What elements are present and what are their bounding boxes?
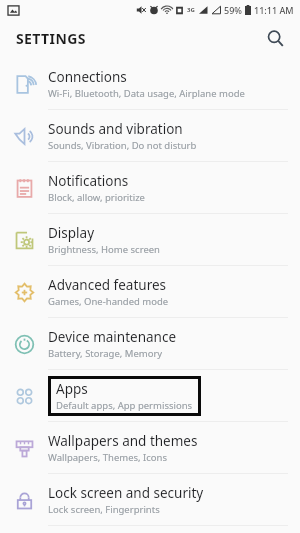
staticText: Apps: [56, 380, 88, 398]
button[interactable]: Display: [0, 214, 300, 265]
staticText: Advanced features: [48, 276, 167, 294]
button[interactable]: Lock screen and security: [0, 474, 300, 525]
button[interactable]: Device maintenance: [0, 318, 300, 369]
button[interactable]: Sounds and vibration: [0, 110, 300, 161]
button[interactable]: Connections: [0, 58, 300, 109]
staticText: Wi-Fi, Bluetooth, Data usage, Airplane m…: [48, 87, 245, 100]
staticText: SETTINGS: [16, 29, 86, 48]
staticText: 59%: [224, 4, 242, 16]
staticText: Display: [48, 224, 95, 242]
staticText: Device maintenance: [48, 328, 177, 346]
button[interactable]: Apps: [0, 370, 300, 421]
button[interactable]: Advanced features: [0, 266, 300, 317]
staticText: Wallpapers, Themes, Icons: [48, 451, 168, 464]
staticText: Battery, Storage, Memory: [48, 347, 163, 360]
staticText: Notifications: [48, 172, 129, 190]
button[interactable]: Notifications: [0, 162, 300, 213]
staticText: Default apps, App permissions: [56, 399, 193, 412]
staticText: Wallpapers and themes: [48, 432, 198, 450]
button[interactable]: Wallpapers and themes: [0, 422, 300, 473]
button[interactable]: Search: [260, 23, 290, 53]
staticText: 11:11 AM: [254, 4, 294, 16]
staticText: Games, One-handed mode: [48, 295, 169, 308]
staticText: Lock screen and security: [48, 484, 204, 502]
staticText: Brightness, Home screen: [48, 243, 160, 256]
staticText: Block, allow, prioritize: [48, 191, 145, 204]
staticText: 3G: [187, 6, 195, 14]
staticText: Connections: [48, 68, 127, 86]
staticText: Sounds and vibration: [48, 120, 183, 138]
staticText: Sounds, Vibration, Do not disturb: [48, 139, 197, 152]
staticText: Lock screen, Fingerprints: [48, 503, 160, 516]
